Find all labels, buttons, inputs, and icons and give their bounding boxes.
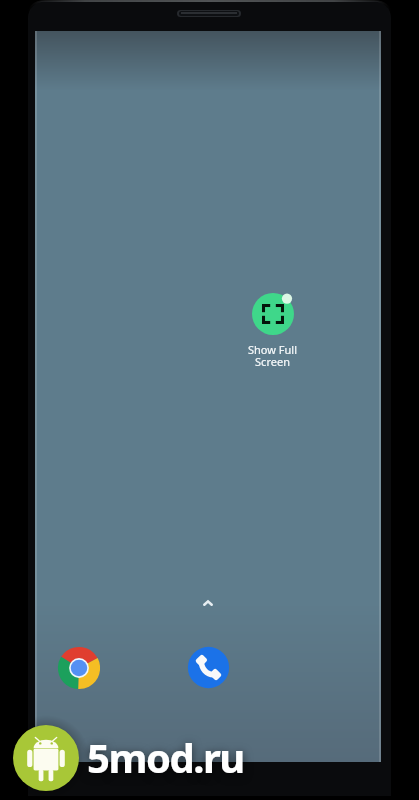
staticText: Show Full Screen (248, 342, 297, 369)
button[interactable]: Chrome (57, 646, 101, 690)
button[interactable]: Open app drawer (195, 592, 221, 614)
staticText: 5mod.ru (87, 730, 244, 784)
button[interactable]: Show Full Screen (230, 293, 314, 375)
button[interactable]: Phone (187, 646, 230, 689)
